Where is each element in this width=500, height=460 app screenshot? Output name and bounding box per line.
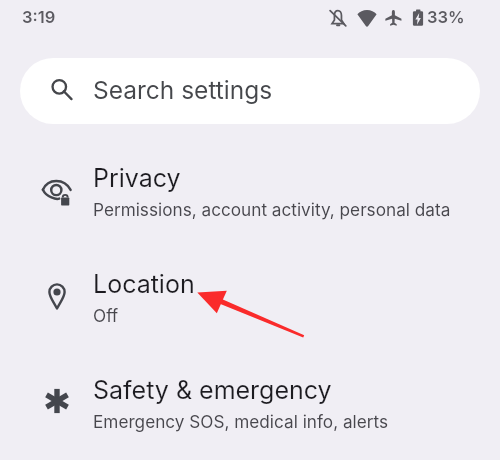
staticText: Emergency SOS, medical info, alerts bbox=[93, 411, 389, 432]
staticText: Search settings bbox=[93, 75, 273, 105]
staticText: 33% bbox=[427, 7, 465, 27]
staticText: Off bbox=[93, 305, 119, 326]
staticText: Safety & emergency bbox=[93, 375, 332, 405]
staticText: Privacy bbox=[93, 163, 181, 193]
staticText: 3:19 bbox=[22, 7, 56, 27]
button[interactable]: Search settings bbox=[20, 58, 480, 124]
staticText: Permissions, account activity, personal … bbox=[93, 199, 451, 220]
button[interactable]: Safety & emergency bbox=[0, 353, 500, 449]
button[interactable]: Privacy bbox=[0, 141, 500, 237]
button[interactable]: Location bbox=[0, 247, 500, 343]
staticText: Location bbox=[93, 269, 195, 299]
